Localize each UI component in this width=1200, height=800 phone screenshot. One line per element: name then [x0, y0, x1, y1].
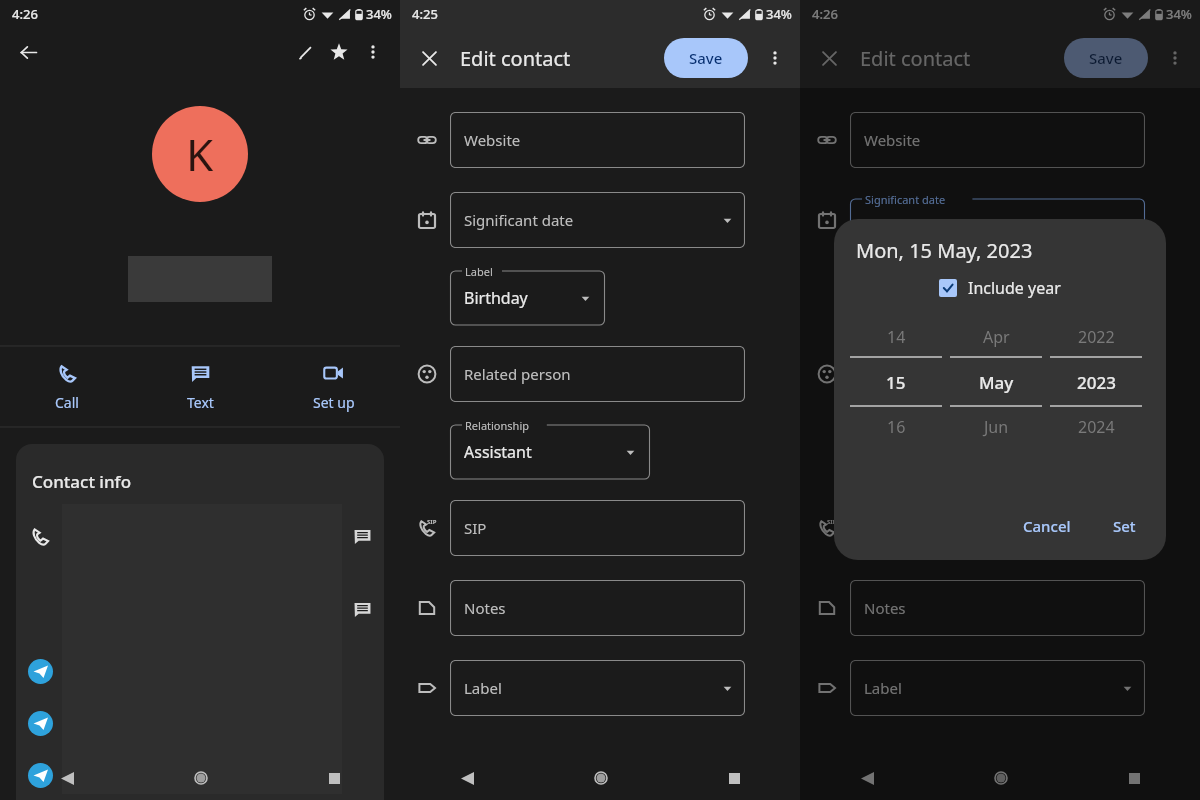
button[interactable]: Website	[450, 112, 745, 168]
staticText: Website	[864, 130, 921, 150]
button[interactable]: Set up	[267, 346, 400, 428]
staticText: Set	[1113, 516, 1136, 536]
button[interactable]: Back	[14, 38, 42, 66]
staticText: Significant date	[464, 210, 574, 230]
staticText: 4:26	[12, 5, 38, 23]
staticText: Set up	[313, 393, 355, 412]
button[interactable]: Call	[0, 346, 134, 428]
staticText: 15	[886, 371, 906, 394]
staticText: 14	[887, 326, 906, 348]
staticText: Relationship	[465, 418, 529, 433]
staticText: Call	[55, 393, 79, 412]
staticText: K	[186, 124, 214, 184]
staticText: Notes	[464, 598, 506, 618]
staticText: 4:25	[412, 5, 438, 23]
staticText: SIP	[827, 518, 837, 526]
staticText: Apr	[983, 326, 1010, 348]
button[interactable]: Website	[850, 112, 1145, 168]
staticText: Save	[1089, 48, 1123, 68]
button[interactable]: Save	[1064, 38, 1148, 78]
staticText: 2022	[1078, 326, 1115, 348]
button[interactable]: SIP	[850, 500, 1145, 556]
button[interactable]: Notes	[850, 580, 1145, 636]
button[interactable]: Home	[186, 763, 216, 793]
button[interactable]: Set	[1103, 508, 1146, 544]
button[interactable]: Back	[52, 763, 82, 793]
button[interactable]: Recents	[319, 763, 349, 793]
staticText: Website	[464, 130, 521, 150]
button[interactable]: Assistant	[450, 418, 650, 480]
button[interactable]: Include year	[939, 277, 1061, 299]
staticText: Text	[187, 393, 214, 412]
button[interactable]: Apr	[946, 317, 1046, 447]
staticText: 34%	[766, 5, 792, 23]
staticText: Label	[465, 264, 493, 279]
button[interactable]: Birthday	[450, 264, 605, 326]
button[interactable]: Save	[664, 38, 748, 78]
button[interactable]: Related person	[450, 346, 745, 402]
staticText: Jun	[984, 416, 1009, 438]
staticText: Label	[864, 678, 902, 698]
button[interactable]: Edit	[288, 35, 322, 69]
staticText: SIP	[427, 518, 437, 526]
staticText: Contact info	[32, 470, 132, 493]
button[interactable]: K	[152, 106, 248, 202]
button[interactable]: Recents	[1119, 763, 1149, 793]
button[interactable]: 14	[846, 317, 946, 447]
button[interactable]: More options	[1158, 41, 1192, 75]
button[interactable]: SIP	[450, 500, 745, 556]
button[interactable]: Favorite	[322, 35, 356, 69]
button[interactable]: Related person	[850, 346, 1145, 402]
button[interactable]: Home	[586, 763, 616, 793]
button[interactable]: Close	[814, 43, 844, 73]
staticText: Related person	[864, 364, 971, 384]
button[interactable]: More options	[356, 35, 390, 69]
button[interactable]: 2022	[1046, 317, 1146, 447]
button[interactable]: Notes	[450, 580, 745, 636]
staticText: Edit contact	[860, 45, 971, 72]
button[interactable]	[850, 192, 1145, 248]
staticText: 2023	[1077, 371, 1116, 394]
staticText: May	[979, 371, 1014, 394]
button[interactable]: Back	[452, 763, 482, 793]
staticText: Birthday	[464, 287, 528, 309]
staticText: Related person	[464, 364, 571, 384]
button[interactable]: Cancel	[1013, 508, 1081, 544]
staticText: Include year	[968, 277, 1061, 299]
staticText: Notes	[864, 598, 906, 618]
button[interactable]: More options	[758, 41, 792, 75]
staticText: Assistant	[464, 441, 532, 463]
button[interactable]: Home	[986, 763, 1016, 793]
staticText: 4:26	[812, 5, 838, 23]
button[interactable]: Recents	[719, 763, 749, 793]
button[interactable]: Back	[852, 763, 882, 793]
button[interactable]: Label	[450, 660, 745, 716]
staticText: Save	[689, 48, 723, 68]
staticText: SIP	[464, 518, 487, 538]
staticText: 34%	[1166, 5, 1192, 23]
button[interactable]: Significant date	[450, 192, 745, 248]
staticText: Label	[464, 678, 502, 698]
staticText: Mon, 15 May, 2023	[856, 237, 1033, 264]
staticText: 16	[887, 416, 906, 438]
staticText: 34%	[366, 5, 392, 23]
button[interactable]: Text	[134, 346, 267, 428]
staticText: 2024	[1078, 416, 1115, 438]
staticText: Cancel	[1023, 516, 1071, 536]
staticText: Significant date	[865, 192, 946, 207]
button[interactable]: Label	[850, 660, 1145, 716]
staticText: Edit contact	[460, 45, 571, 72]
button[interactable]: Close	[414, 43, 444, 73]
